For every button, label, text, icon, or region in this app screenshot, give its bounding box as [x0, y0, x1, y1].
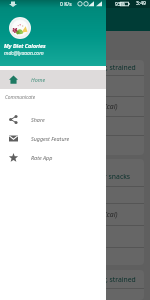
- staticText: mdc@lyaaan.com: [4, 50, 44, 57]
- staticText: My Diet Calories: [4, 42, 46, 49]
- staticText: popcorn, other snacks: [59, 172, 131, 181]
- button[interactable]: Rate App: [0, 148, 106, 167]
- staticText: Home: [31, 76, 46, 83]
- button[interactable]: Suggest Feature: [0, 129, 106, 148]
- staticText: Share: [31, 116, 45, 123]
- other: Home: [9, 75, 18, 84]
- other: Rate App: [9, 153, 18, 162]
- staticText: Babyfood, juice, pear, strained: [40, 275, 136, 284]
- other: Suggest Feature: [9, 134, 18, 143]
- staticText: Serving size: [62, 82, 98, 91]
- staticText: 93%: [115, 1, 125, 8]
- staticText: Rate App: [31, 154, 53, 161]
- button[interactable]: Share: [0, 110, 106, 129]
- staticText: 0 K/s: [60, 1, 72, 8]
- staticText: 3:49 PM: [136, 0, 150, 8]
- staticText: Communicate: [5, 94, 36, 101]
- staticText: Suggest Feature: [31, 135, 70, 142]
- other: Share: [9, 115, 18, 124]
- staticText: Carbohydrate (70.3 Kcal): [43, 210, 118, 219]
- staticText: Carbohydrate (62.0 Kcal): [43, 102, 118, 111]
- staticText: Babyfood, juice, pear, strained: [40, 63, 136, 72]
- button[interactable]: Home: [0, 70, 106, 89]
